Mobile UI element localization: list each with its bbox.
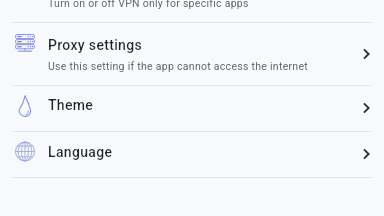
other: Theme	[19, 95, 31, 117]
staticText: Use this setting if the app cannot acces…	[48, 60, 308, 72]
staticText: Language	[48, 144, 113, 160]
button[interactable]: Proxy settings	[0, 22, 384, 85]
other: Language	[15, 141, 35, 162]
staticText: Theme	[48, 97, 94, 113]
staticText: Turn on or off VPN only for specific app…	[48, 0, 249, 9]
staticText: Proxy settings	[48, 37, 143, 53]
other: Proxy settings	[15, 34, 35, 52]
button[interactable]: Theme	[0, 85, 384, 131]
button[interactable]: Language	[0, 131, 384, 177]
